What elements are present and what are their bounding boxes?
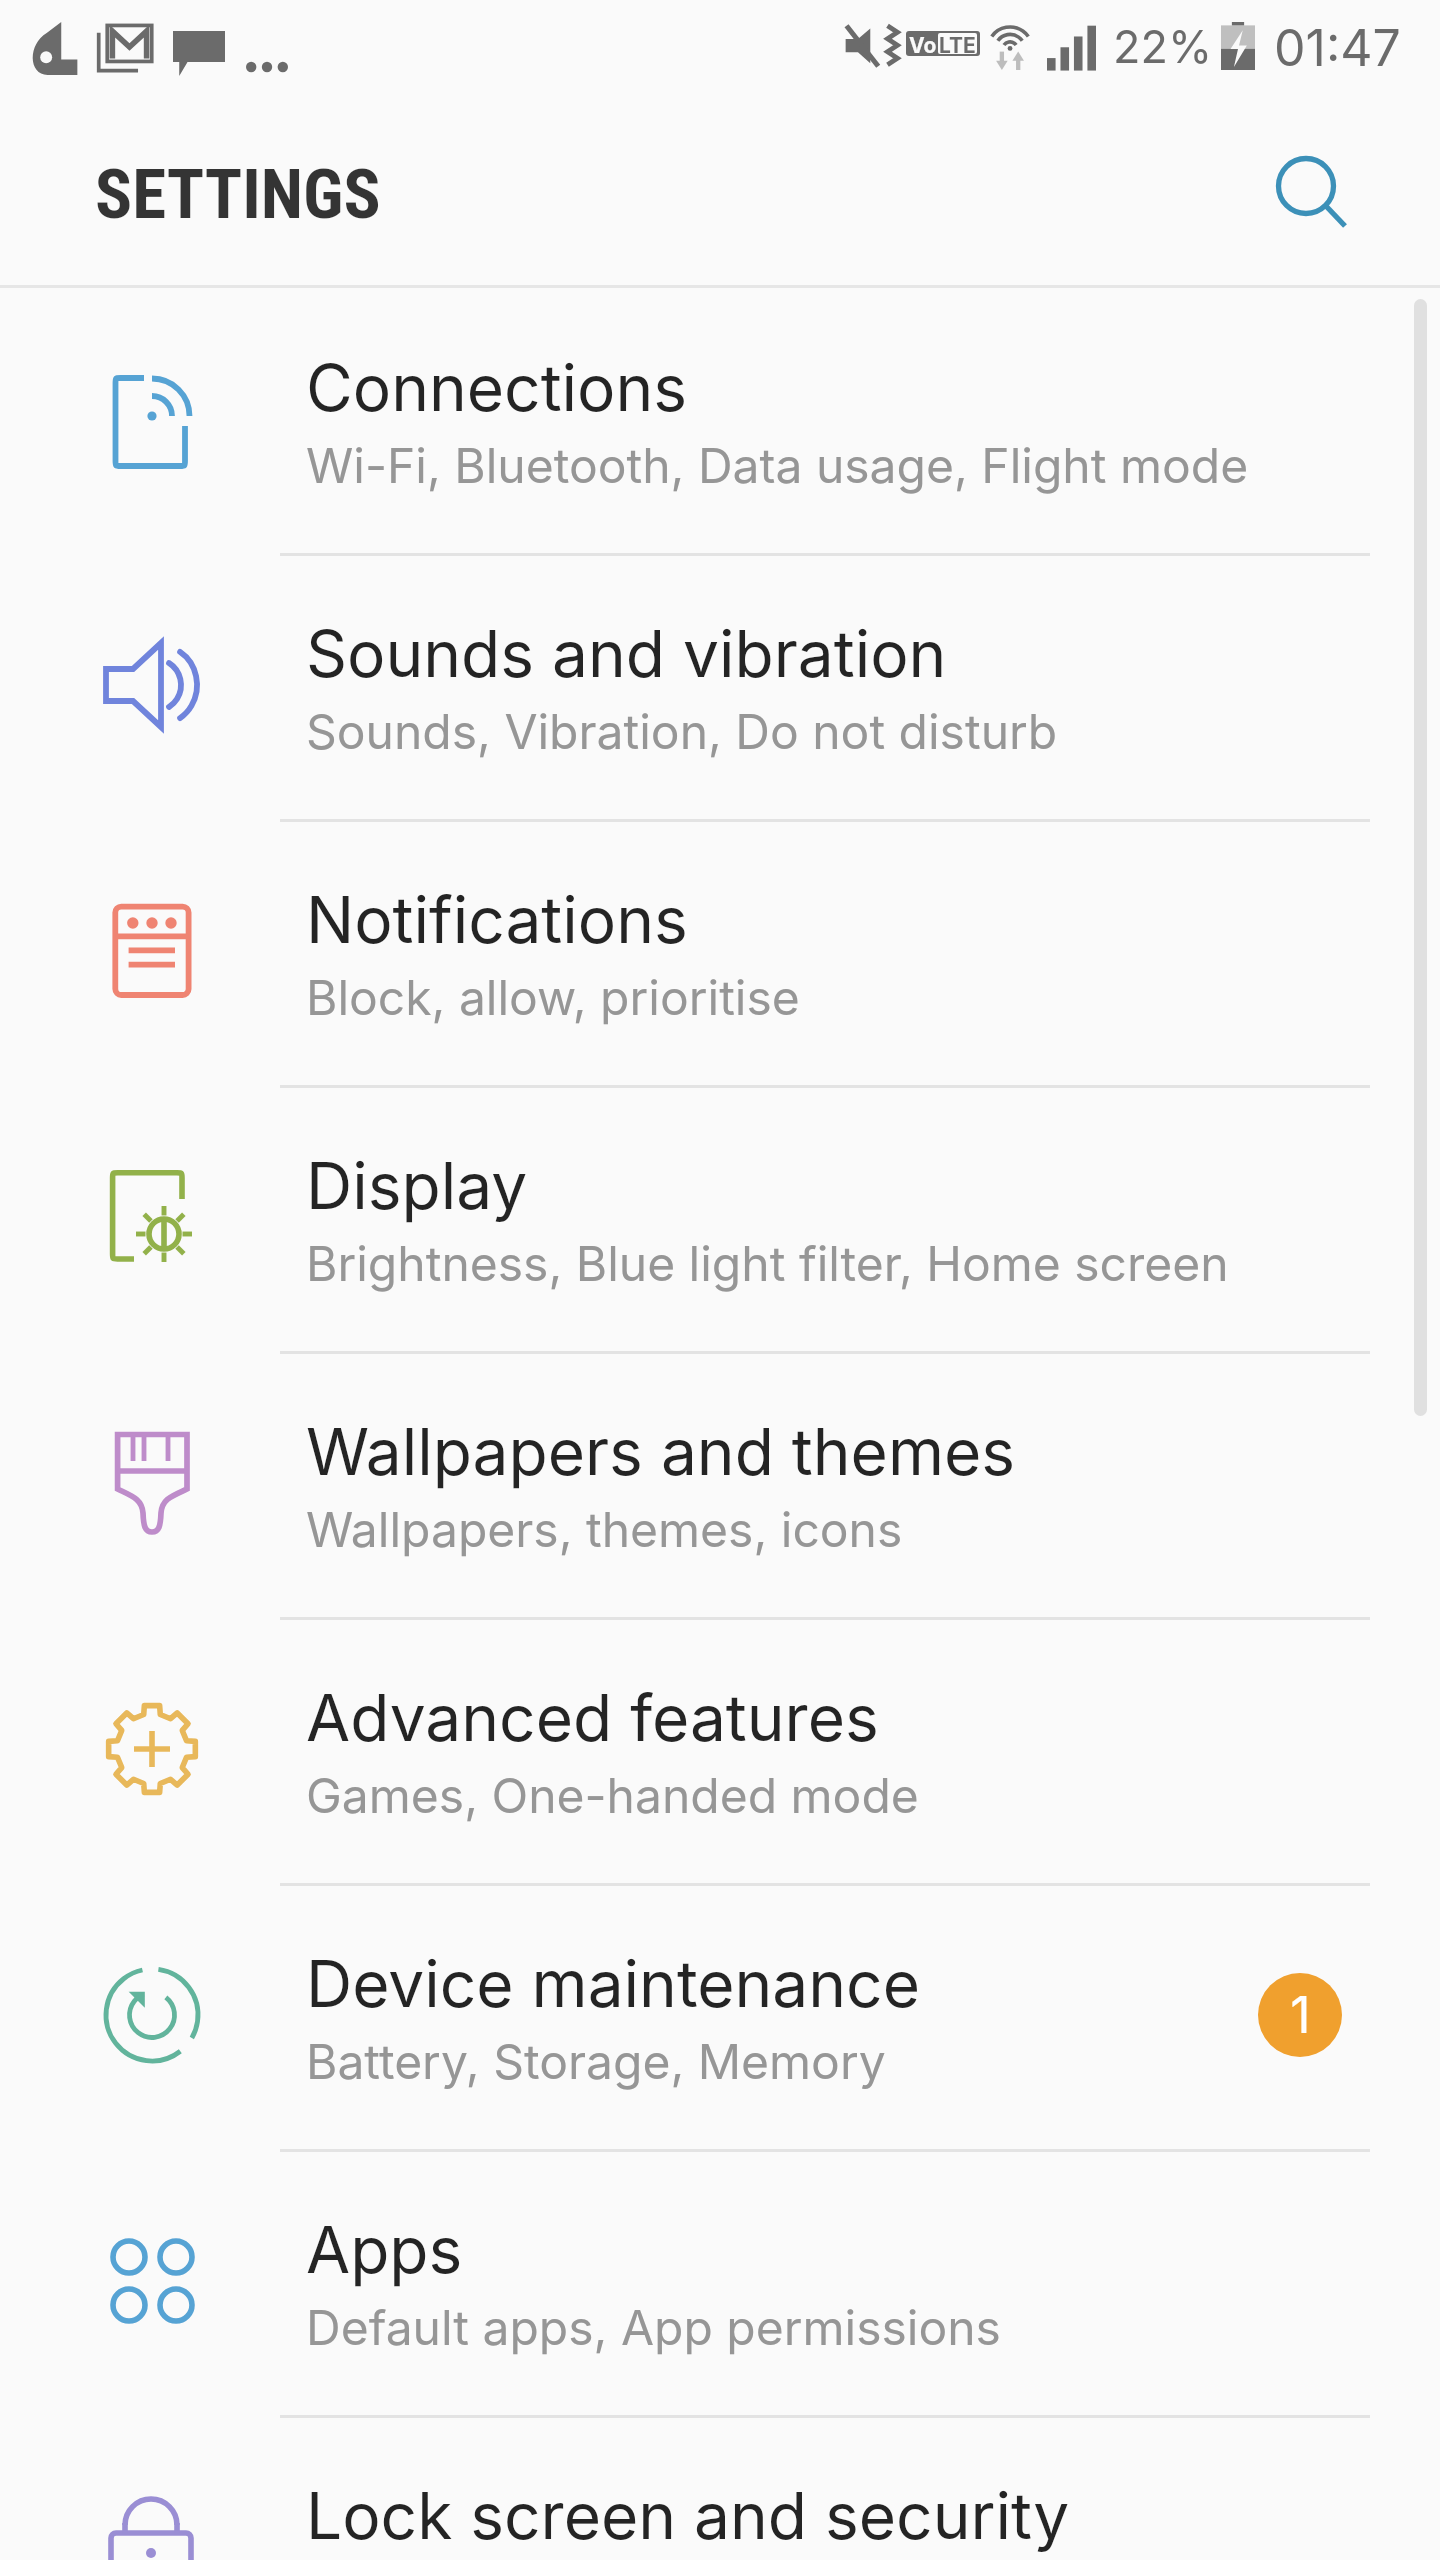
- button[interactable]: Lock screen and security: [0, 2416, 1440, 2560]
- staticText: Wi-Fi, Bluetooth, Data usage, Flight mod…: [306, 436, 1249, 494]
- button[interactable]: Display: [0, 1086, 1440, 1352]
- button[interactable]: Notifications: [0, 820, 1440, 1086]
- staticText: Battery, Storage, Memory: [306, 2032, 886, 2090]
- staticText: Sounds and vibration: [306, 615, 947, 692]
- staticText: Block, allow, prioritise: [306, 968, 800, 1026]
- staticText: 22%: [1113, 19, 1213, 73]
- button[interactable]: Sounds and vibration: [0, 554, 1440, 820]
- staticText: Apps: [306, 2211, 463, 2288]
- button[interactable]: Connections: [0, 288, 1440, 554]
- staticText: Wallpapers and themes: [306, 1413, 1016, 1490]
- button[interactable]: Device maintenance: [0, 1884, 1440, 2150]
- staticText: Sounds, Vibration, Do not disturb: [306, 702, 1058, 760]
- button[interactable]: Wallpapers and themes: [0, 1352, 1440, 1618]
- staticText: 01:47: [1274, 18, 1401, 78]
- button[interactable]: Search: [1247, 127, 1377, 257]
- staticText: Connections: [306, 349, 688, 426]
- staticText: Wallpapers, themes, icons: [306, 1500, 903, 1558]
- staticText: Advanced features: [306, 1679, 879, 1756]
- staticText: Vo: [909, 33, 937, 54]
- staticText: Default apps, App permissions: [306, 2298, 1001, 2356]
- staticText: 1: [1290, 1985, 1311, 2045]
- button[interactable]: Apps: [0, 2150, 1440, 2416]
- staticText: Lock screen and security: [306, 2477, 1070, 2554]
- staticText: Display: [306, 1147, 528, 1224]
- staticText: Games, One-handed mode: [306, 1766, 919, 1824]
- staticText: LTE: [939, 33, 976, 54]
- staticText: Device maintenance: [306, 1945, 920, 2022]
- staticText: Notifications: [306, 881, 688, 958]
- staticText: Brightness, Blue light filter, Home scre…: [306, 1234, 1229, 1292]
- button[interactable]: Advanced features: [0, 1618, 1440, 1884]
- staticText: SETTINGS: [95, 154, 381, 235]
